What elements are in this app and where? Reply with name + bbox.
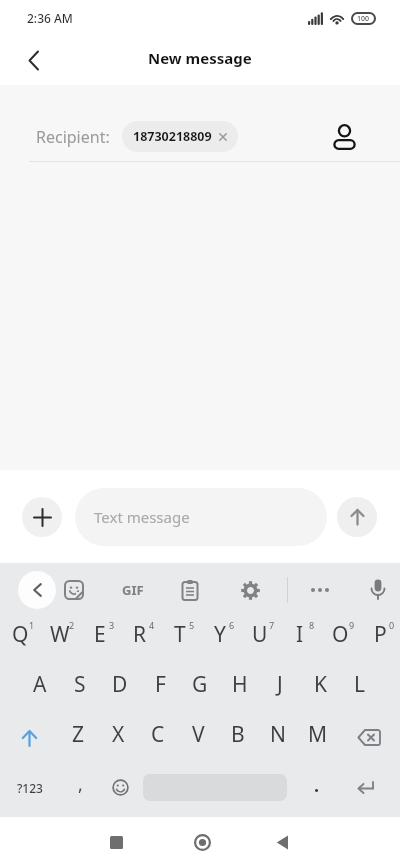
button[interactable] (370, 579, 386, 601)
button[interactable] (337, 497, 377, 537)
button[interactable]: , (60, 762, 100, 813)
button[interactable]: 18730218809 (122, 121, 238, 152)
staticText: 100 (357, 14, 370, 24)
staticText: 18730218809 (133, 128, 212, 145)
button[interactable]: C (138, 712, 178, 762)
button[interactable] (190, 830, 214, 854)
staticText: 5 (189, 619, 195, 631)
staticText: S (74, 670, 86, 699)
button[interactable]: O (320, 612, 360, 662)
button[interactable] (181, 579, 199, 601)
button[interactable]: X (98, 712, 138, 762)
button[interactable] (240, 580, 261, 601)
staticText: N (270, 720, 286, 749)
button[interactable] (18, 571, 56, 609)
button[interactable]: L (340, 662, 380, 712)
button[interactable]: I (280, 612, 320, 662)
staticText: Q (12, 620, 29, 649)
staticText: I (296, 620, 304, 649)
staticText: P (374, 620, 387, 649)
staticText: B (231, 720, 245, 749)
button[interactable] (0, 712, 58, 762)
staticText: 6 (229, 619, 235, 631)
button[interactable]: K (300, 662, 340, 712)
staticText: G (192, 670, 208, 699)
staticText: A (33, 670, 47, 699)
button[interactable] (63, 579, 85, 601)
button[interactable] (100, 762, 140, 813)
button[interactable] (22, 497, 62, 537)
button[interactable]: Y (200, 612, 240, 662)
button[interactable] (270, 830, 294, 854)
button[interactable]: Q (0, 612, 40, 662)
staticText: J (277, 670, 283, 699)
button[interactable]: D (100, 662, 140, 712)
button[interactable]: F (140, 662, 180, 712)
staticText: L (354, 670, 366, 699)
button[interactable]: E (80, 612, 120, 662)
button[interactable] (104, 830, 128, 854)
staticText: Recipient: (36, 126, 110, 148)
staticText: 8 (309, 619, 315, 631)
button[interactable]: ?123 (0, 762, 60, 813)
staticText: R (133, 620, 147, 649)
staticText: C (151, 720, 165, 749)
button[interactable]: S (60, 662, 100, 712)
button[interactable] (333, 124, 356, 150)
button[interactable]: V (178, 712, 218, 762)
button[interactable]: Text message (75, 488, 327, 546)
staticText: Text message (94, 507, 190, 527)
staticText: E (94, 620, 106, 649)
staticText: 4 (149, 619, 155, 631)
staticText: X (112, 720, 125, 749)
button[interactable]: R (120, 612, 160, 662)
staticText: 2:36 AM (27, 10, 73, 26)
button[interactable]: T (160, 612, 200, 662)
staticText: 2 (69, 619, 75, 631)
button[interactable]: U (240, 612, 280, 662)
button[interactable]: B (218, 712, 258, 762)
staticText: , (78, 772, 83, 797)
staticText: D (112, 670, 128, 699)
staticText: . (314, 773, 320, 798)
button[interactable]: J (260, 662, 300, 712)
staticText: 3 (109, 619, 115, 631)
staticText: 9 (349, 619, 355, 631)
button[interactable]: A (20, 662, 60, 712)
staticText: 1 (29, 619, 35, 631)
button[interactable] (347, 762, 400, 813)
staticText: M (308, 720, 328, 749)
button[interactable]: M (298, 712, 338, 762)
staticText: H (232, 670, 248, 699)
button[interactable]: P (360, 612, 400, 662)
staticText: V (192, 720, 205, 749)
staticText: O (332, 620, 349, 649)
button[interactable]: W (40, 612, 80, 662)
staticText: F (155, 670, 166, 699)
button[interactable] (308, 580, 332, 600)
button[interactable]: N (258, 712, 298, 762)
button[interactable]: . (287, 762, 347, 813)
staticText: 0 (389, 619, 395, 631)
button[interactable] (338, 712, 400, 762)
button[interactable]: GIF (122, 581, 144, 599)
staticText: Z (72, 720, 85, 749)
staticText: W (50, 620, 70, 649)
staticText: T (174, 620, 186, 649)
button[interactable]: G (180, 662, 220, 712)
button[interactable]: H (220, 662, 260, 712)
staticText: New message (148, 48, 252, 68)
staticText: ?123 (17, 780, 43, 796)
button[interactable]: Z (58, 712, 98, 762)
button[interactable] (28, 50, 39, 71)
staticText: K (314, 670, 327, 699)
staticText: U (252, 620, 268, 649)
staticText: Y (214, 620, 226, 649)
staticText: 7 (269, 619, 275, 631)
